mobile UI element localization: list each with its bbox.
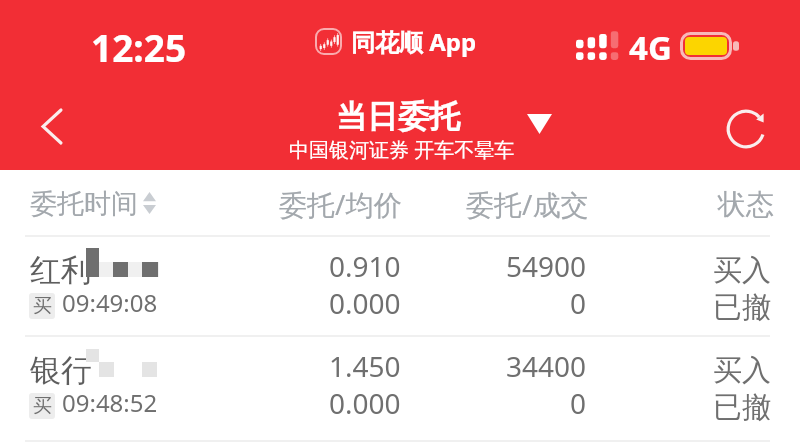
staticText: 0 <box>570 384 587 422</box>
staticText: 中国银河证券 开车不晕车 <box>289 136 515 163</box>
staticText: 已撤 <box>713 389 771 426</box>
staticText: 当日委托 <box>336 97 460 136</box>
staticText: 同花顺 App <box>351 25 477 58</box>
staticText: 状态 <box>718 187 774 222</box>
staticText: 委托/成交 <box>466 185 589 223</box>
staticText: 买入 <box>713 352 771 389</box>
staticText: 0.910 <box>329 247 401 285</box>
staticText: 4G <box>629 25 672 70</box>
staticText: 54900 <box>506 247 587 285</box>
staticText: 红利 <box>30 251 92 290</box>
staticText: 银行 <box>30 351 92 390</box>
staticText: 34400 <box>506 347 587 385</box>
staticText: 1.450 <box>329 347 401 385</box>
staticText: 0 <box>570 284 587 322</box>
staticText: 12:25 <box>91 22 187 72</box>
staticText: 委托/均价 <box>279 185 402 223</box>
staticText: 09:49:08 <box>62 286 158 319</box>
staticText: 0.000 <box>329 284 401 322</box>
button[interactable]: Expand account <box>515 100 563 148</box>
staticText: 0.000 <box>329 384 401 422</box>
staticText: 买入 <box>713 252 771 289</box>
button[interactable]: Refresh <box>720 103 772 155</box>
staticText: 买 <box>33 294 52 318</box>
button[interactable]: 银行 <box>0 337 800 436</box>
staticText: 09:48:52 <box>62 386 158 419</box>
staticText: 已撤 <box>713 289 771 326</box>
button[interactable]: Back <box>26 100 78 152</box>
staticText: 委托时间 <box>30 187 138 221</box>
staticText: 买 <box>33 394 52 418</box>
button[interactable]: 红利 <box>0 237 800 336</box>
